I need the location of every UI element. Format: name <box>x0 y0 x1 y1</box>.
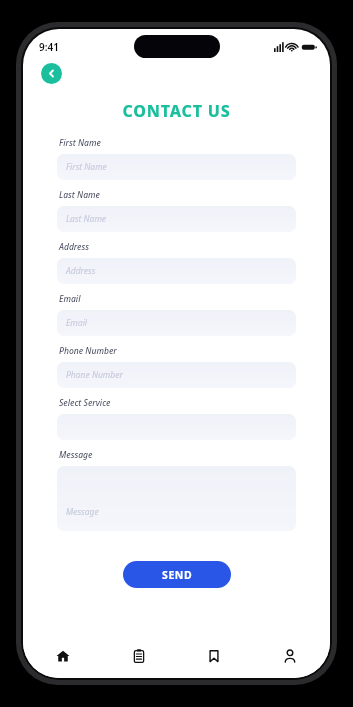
staticText: Address <box>59 241 90 253</box>
button[interactable]: First Name <box>57 154 296 180</box>
staticText: Message <box>59 449 93 461</box>
staticText: Email <box>59 293 81 305</box>
button[interactable]: Home <box>39 636 87 676</box>
staticText: Last Name <box>59 189 100 201</box>
staticText: Phone Number <box>59 345 117 357</box>
staticText: Last Name <box>66 213 107 225</box>
staticText: CONTACT US <box>122 100 231 122</box>
staticText: Phone Number <box>66 369 123 381</box>
staticText: Address <box>66 265 96 277</box>
button[interactable]: Last Name <box>57 206 296 232</box>
staticText: Select Service <box>59 397 111 409</box>
button[interactable]: Orders <box>115 636 163 676</box>
staticText: SEND <box>162 568 193 582</box>
button[interactable]: Back <box>41 63 62 84</box>
button[interactable]: Profile <box>266 636 314 676</box>
staticText: 9:41 <box>39 40 59 54</box>
button[interactable]: Address <box>57 258 296 284</box>
button[interactable]: SEND <box>123 561 231 588</box>
button[interactable]: Email <box>57 310 296 336</box>
button[interactable]: Message <box>57 466 296 531</box>
staticText: First Name <box>59 137 101 149</box>
staticText: Message <box>66 506 99 518</box>
button[interactable]: Saved <box>190 636 238 676</box>
button[interactable]: Phone Number <box>57 362 296 388</box>
staticText: Email <box>66 317 88 329</box>
staticText: First Name <box>66 161 107 173</box>
